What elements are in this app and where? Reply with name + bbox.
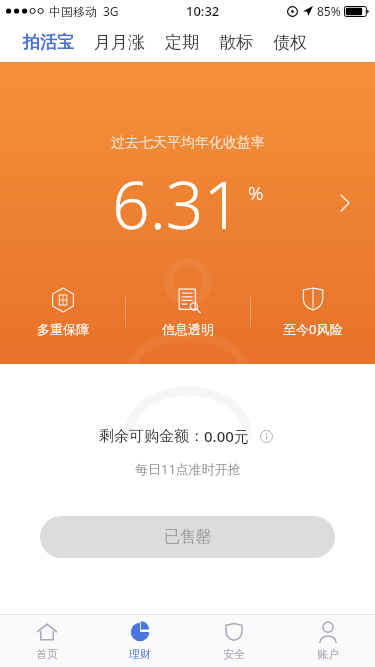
button[interactable]: 月月涨 [87,26,152,59]
staticText: 3G [103,3,119,19]
staticText: 月月涨 [94,32,145,53]
button[interactable]: 查看收益详情 [325,183,365,223]
staticText: 6.31 [112,158,242,248]
staticText: 安全 [223,647,245,661]
staticText: 账户 [317,647,339,661]
button[interactable]: 拍活宝 [16,26,81,59]
staticText: 拍活宝 [23,32,74,53]
staticText: 至今0风险 [283,320,343,338]
button[interactable]: 定期 [158,26,206,59]
staticText: 散标 [219,32,253,53]
staticText: 85% [317,3,341,19]
button[interactable]: 债权 [266,26,314,59]
button[interactable]: 说明 [256,426,276,446]
staticText: 中国移动 [49,4,97,19]
staticText: 多重保障 [37,321,89,337]
staticText: 已售罄 [164,527,212,547]
staticText: 理财 [129,647,151,661]
staticText: 首页 [36,647,58,661]
staticText: 0.00元 [204,426,249,446]
button[interactable]: 首页 [0,615,93,667]
staticText: 信息透明 [162,321,214,337]
button[interactable]: 账户 [281,615,375,667]
staticText: 每日11点准时开抢 [135,460,241,478]
staticText: 过去七天平均年化收益率 [111,134,265,152]
button[interactable]: 信息透明 [126,281,250,343]
button[interactable]: 散标 [212,26,260,59]
staticText: 债权 [273,32,307,53]
staticText: % [248,180,264,206]
button[interactable]: 安全 [187,615,281,667]
button[interactable]: 至今0风险 [251,280,375,344]
button[interactable]: 已售罄 [40,516,335,558]
button[interactable]: 多重保障 [0,281,125,343]
staticText: 剩余可购金额： [99,427,204,446]
button[interactable]: 理财 [93,615,187,667]
staticText: 10:32 [186,2,220,20]
staticText: 定期 [165,32,199,53]
